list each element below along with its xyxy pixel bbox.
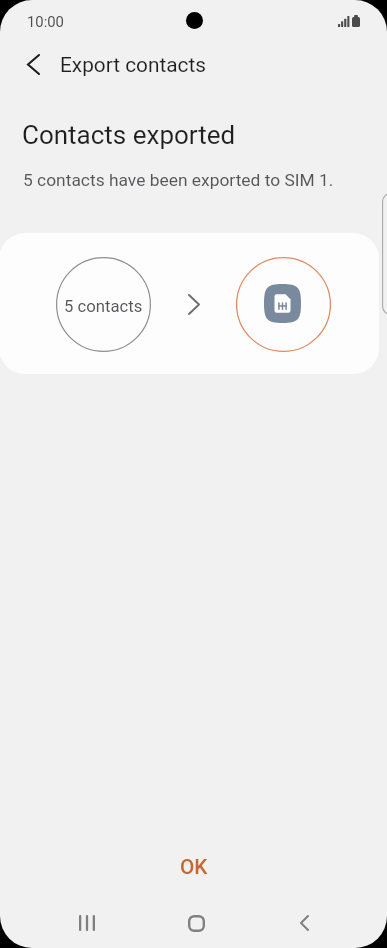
staticText: 5 contacts — [64, 297, 143, 317]
staticText: OK — [180, 855, 208, 879]
staticText: Contacts exported — [22, 120, 236, 150]
button[interactable]: Home — [172, 899, 220, 947]
button[interactable]: OK — [143, 845, 245, 889]
button[interactable]: Back — [11, 42, 55, 86]
staticText: 5 contacts have been exported to SIM 1. — [23, 170, 334, 190]
staticText: Export contacts — [60, 53, 206, 77]
button[interactable]: 5 contacts — [0, 233, 379, 374]
button[interactable]: Back — [280, 899, 328, 947]
staticText: 10:00 — [27, 13, 64, 30]
button[interactable]: Recents — [63, 899, 111, 947]
